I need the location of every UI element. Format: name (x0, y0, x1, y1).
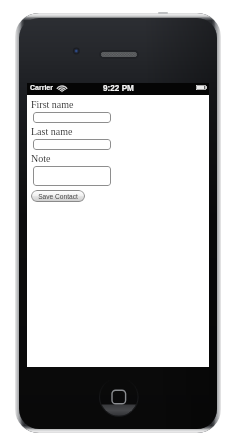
staticText: 9:22 PM (103, 84, 134, 93)
button[interactable]: Home (99, 377, 139, 418)
staticText: Last name (31, 126, 73, 137)
staticText: Note (31, 153, 51, 164)
staticText: First name (31, 99, 74, 110)
button[interactable]: Save Contact (31, 190, 85, 202)
staticText: Carrier (30, 84, 53, 92)
button[interactable]: Text field (33, 112, 111, 123)
button[interactable]: Text field (33, 139, 111, 150)
staticText: Save Contact (38, 193, 78, 200)
button[interactable]: Text field (33, 166, 111, 186)
